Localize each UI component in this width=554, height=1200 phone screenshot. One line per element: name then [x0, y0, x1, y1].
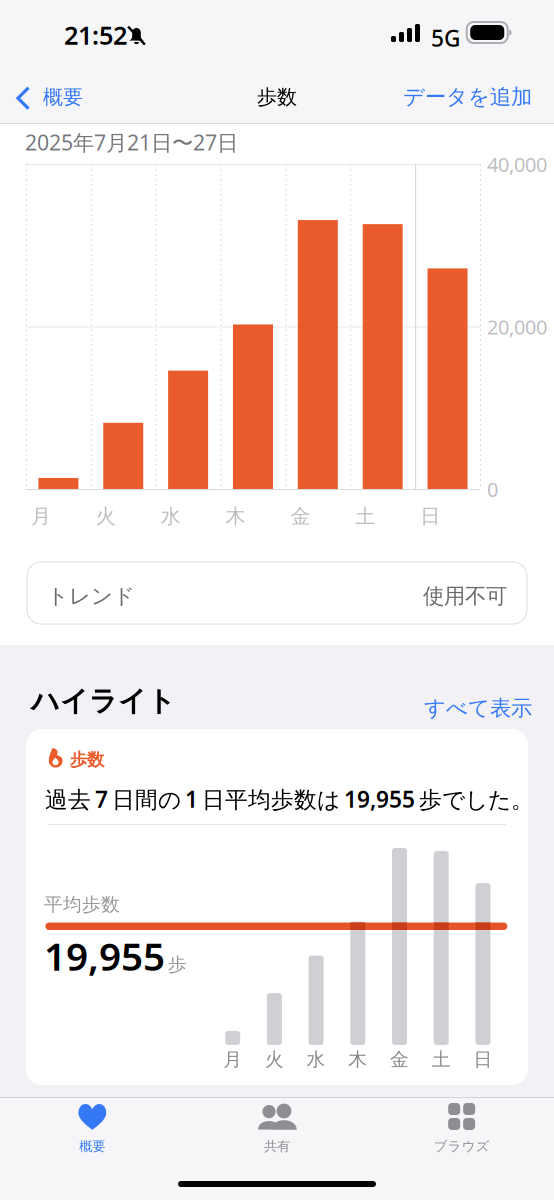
- staticText: 金: [290, 504, 310, 529]
- staticText: 土: [355, 504, 375, 529]
- staticText: 土: [432, 1048, 451, 1071]
- staticText: 火: [265, 1048, 284, 1071]
- staticText: 5G: [431, 23, 460, 53]
- staticText: トレンド: [47, 583, 135, 609]
- staticText: ブラウズ: [434, 1138, 490, 1154]
- staticText: 木: [226, 504, 246, 529]
- staticText: すべて表示: [424, 695, 532, 721]
- staticText: 0: [487, 476, 498, 503]
- staticText: データを追加: [403, 84, 532, 110]
- staticText: 概要: [79, 1138, 105, 1154]
- staticText: 歩数: [70, 749, 104, 770]
- staticText: 日: [473, 1048, 492, 1071]
- staticText: 平均歩数: [44, 893, 120, 916]
- staticText: 日: [420, 504, 440, 529]
- staticText: 木: [348, 1048, 367, 1071]
- button[interactable]: 歩数: [26, 729, 528, 1085]
- button[interactable]: 共有: [185, 1097, 369, 1163]
- staticText: 過去 7 日間の 1 日平均歩数は 19,955 歩でした。: [45, 784, 534, 814]
- staticText: 20,000: [487, 313, 547, 340]
- staticText: 19,955: [44, 930, 165, 981]
- staticText: ハイライト: [31, 684, 176, 718]
- staticText: 21:52: [64, 18, 127, 52]
- staticText: 水: [307, 1048, 326, 1071]
- button[interactable]: データを追加: [391, 66, 544, 128]
- staticText: 概要: [43, 85, 83, 109]
- staticText: 共有: [264, 1138, 290, 1154]
- staticText: 金: [390, 1048, 409, 1071]
- button[interactable]: 概要: [0, 1097, 185, 1163]
- button[interactable]: すべて表示: [416, 689, 540, 727]
- staticText: 水: [161, 504, 181, 529]
- staticText: 使用不可: [423, 583, 507, 609]
- staticText: 歩: [168, 953, 187, 976]
- button[interactable]: ブラウズ: [369, 1097, 554, 1163]
- staticText: 2025年7月21日〜27日: [25, 128, 238, 156]
- staticText: 歩数: [257, 85, 297, 109]
- staticText: 40,000: [487, 151, 547, 178]
- staticText: 月: [31, 504, 51, 529]
- staticText: 月: [223, 1048, 242, 1071]
- button[interactable]: トレンド: [27, 562, 527, 624]
- button[interactable]: 概要: [0, 66, 97, 128]
- staticText: 火: [96, 504, 116, 529]
